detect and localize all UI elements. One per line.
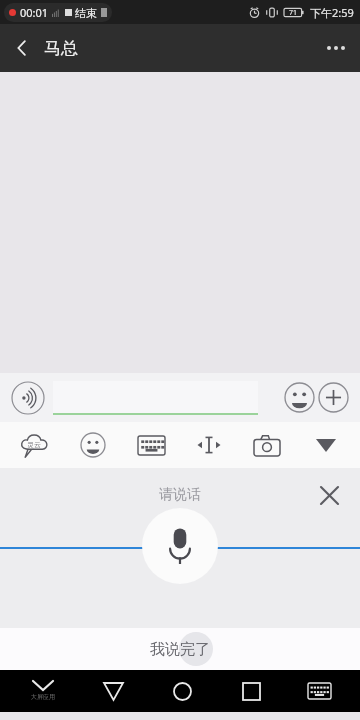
button[interactable] [53, 381, 258, 415]
button[interactable]: Home [154, 670, 210, 712]
button[interactable]: 我说完了 [0, 628, 360, 670]
button[interactable]: Recent apps [223, 670, 279, 712]
button[interactable]: Collapse [302, 422, 350, 468]
staticText: 00:01 [20, 5, 49, 20]
button[interactable]: Move cursor [185, 422, 233, 468]
button[interactable]: Close voice input [312, 478, 346, 512]
button[interactable]: Back [0, 26, 44, 70]
staticText: 请说话 [159, 486, 201, 504]
button[interactable]: Back [85, 670, 141, 712]
staticText: 大屏应用 [31, 693, 55, 701]
button[interactable]: Keyboard [291, 670, 347, 712]
button[interactable]: Voice input [11, 381, 45, 415]
button[interactable]: Keyboard [127, 422, 175, 468]
staticText: 下午2:59 [310, 5, 354, 20]
button[interactable]: Emoji [284, 382, 315, 413]
button[interactable]: More options [312, 24, 360, 72]
staticText: 结束 [75, 6, 97, 20]
staticText: 71 [289, 8, 298, 18]
button[interactable]: Emoji [69, 422, 117, 468]
button[interactable]: Add attachment [318, 382, 349, 413]
button[interactable]: Microphone [142, 508, 218, 584]
staticText: 灵云 [27, 440, 41, 449]
button[interactable]: Hide navigation bar [13, 670, 73, 712]
staticText: 我说完了 [150, 640, 210, 659]
button[interactable]: Camera [243, 422, 291, 468]
staticText: 马总 [44, 38, 78, 59]
button[interactable]: Cloud voice [10, 422, 58, 468]
